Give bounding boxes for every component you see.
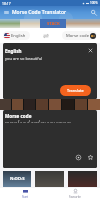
button[interactable]: Search — [89, 8, 98, 17]
staticText: you are so beautiful — [5, 56, 43, 61]
staticText: Start — [22, 195, 29, 199]
staticText: Morse code — [66, 33, 89, 39]
button[interactable]: Swap languages — [42, 32, 50, 40]
button[interactable]: Add to favourites — [87, 154, 94, 161]
staticText: N:OD:S — [10, 176, 25, 182]
staticText: 18:17 — [2, 1, 11, 6]
button[interactable]: Translate — [60, 85, 91, 96]
button[interactable] — [35, 171, 64, 187]
button[interactable]: N:OD:S — [3, 171, 31, 187]
staticText: English — [11, 33, 26, 39]
button[interactable]: Favourite — [50, 188, 100, 200]
staticText: Morse Code Translator — [12, 9, 67, 16]
button[interactable]: Morse code — [62, 31, 97, 40]
staticText: 100% — [90, 1, 98, 5]
button[interactable]: Start — [0, 188, 50, 200]
staticText: English — [5, 48, 22, 54]
button[interactable]: Clear text — [87, 47, 94, 54]
button[interactable] — [68, 171, 97, 187]
staticText: Morse code — [5, 113, 32, 119]
staticText: STACK — [47, 21, 60, 27]
button[interactable]: Open navigation menu — [2, 8, 11, 17]
staticText: Translate — [67, 88, 84, 93]
button[interactable]: English — [3, 31, 30, 40]
staticText: Favourite — [69, 195, 81, 199]
staticText: -.-- --- ..- / .- .-. . / ... --- / -...… — [5, 119, 71, 124]
button[interactable]: Play morse audio — [75, 154, 82, 161]
